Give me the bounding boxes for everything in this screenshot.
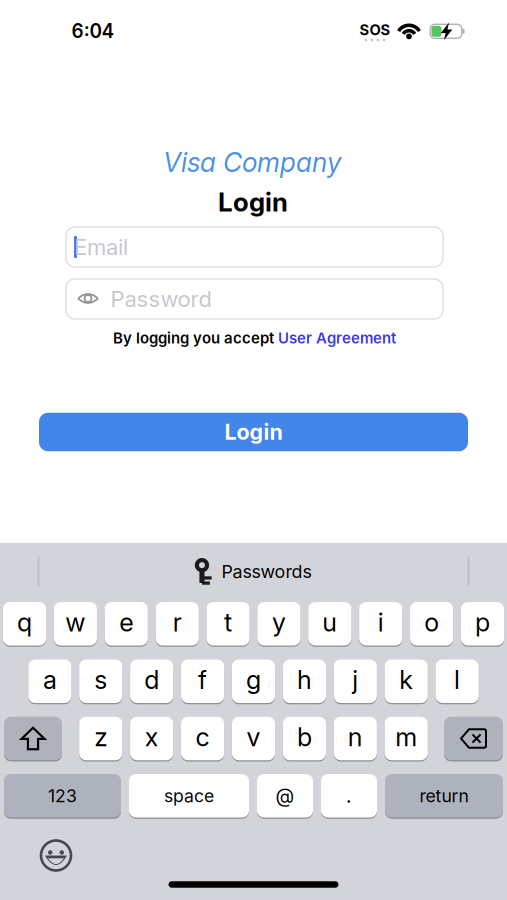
- button[interactable]: 123: [4, 773, 121, 818]
- button[interactable]: y: [257, 601, 301, 646]
- staticText: i: [378, 607, 384, 638]
- button[interactable]: Password: [66, 279, 443, 319]
- staticText: Password: [110, 286, 211, 312]
- staticText: Visa Company: [163, 146, 341, 178]
- staticText: f: [198, 664, 207, 695]
- staticText: Email: [74, 234, 128, 260]
- button[interactable]: a: [28, 658, 71, 704]
- staticText: @: [275, 784, 294, 807]
- staticText: k: [399, 664, 413, 695]
- staticText: x: [145, 722, 159, 752]
- staticText: 123: [48, 785, 77, 806]
- button[interactable]: x: [130, 716, 173, 761]
- staticText: r: [173, 607, 182, 638]
- staticText: .: [346, 784, 352, 807]
- staticText: e: [119, 607, 133, 638]
- button[interactable]: e: [105, 601, 148, 646]
- button[interactable]: Emoji: [39, 838, 73, 872]
- staticText: u: [322, 607, 337, 638]
- staticText: w: [65, 607, 85, 638]
- button[interactable]: k: [385, 658, 428, 704]
- staticText: 6:04: [71, 19, 114, 42]
- button[interactable]: v: [232, 716, 275, 761]
- button[interactable]: t: [206, 601, 250, 646]
- staticText: z: [94, 722, 107, 752]
- button[interactable]: q: [3, 601, 46, 646]
- button[interactable]: b: [283, 716, 326, 761]
- staticText: t: [224, 607, 232, 638]
- button[interactable]: .: [321, 773, 377, 818]
- staticText: q: [17, 607, 32, 638]
- button[interactable]: Login: [39, 413, 468, 451]
- staticText: d: [144, 664, 159, 695]
- button[interactable]: f: [181, 658, 224, 704]
- button[interactable]: m: [385, 716, 428, 761]
- button[interactable]: User Agreement: [278, 329, 396, 347]
- staticText: j: [352, 664, 358, 695]
- staticText: c: [196, 722, 210, 752]
- button[interactable]: o: [410, 601, 453, 646]
- button[interactable]: w: [54, 601, 97, 646]
- button[interactable]: @: [257, 773, 313, 818]
- button[interactable]: Delete: [444, 716, 503, 761]
- staticText: Passwords: [221, 561, 311, 582]
- staticText: a: [43, 664, 57, 695]
- staticText: o: [424, 607, 439, 638]
- staticText: SOS: [359, 21, 390, 39]
- staticText: b: [297, 722, 312, 752]
- button[interactable]: n: [334, 716, 377, 761]
- button[interactable]: l: [435, 658, 479, 704]
- button[interactable]: p: [461, 601, 504, 646]
- button[interactable]: s: [79, 658, 122, 704]
- button[interactable]: h: [283, 658, 326, 704]
- button[interactable]: Email: [66, 227, 443, 267]
- staticText: p: [475, 607, 490, 638]
- staticText: Login: [218, 186, 288, 218]
- button[interactable]: Passwords: [195, 558, 311, 585]
- staticText: v: [246, 722, 260, 752]
- staticText: s: [94, 664, 107, 695]
- button[interactable]: u: [308, 601, 351, 646]
- button[interactable]: r: [156, 601, 199, 646]
- staticText: By logging you accept: [113, 329, 274, 347]
- button[interactable]: return: [385, 773, 503, 818]
- staticText: g: [246, 664, 261, 695]
- staticText: y: [272, 607, 286, 638]
- button[interactable]: g: [232, 658, 275, 704]
- staticText: n: [348, 722, 363, 752]
- button[interactable]: i: [359, 601, 402, 646]
- staticText: l: [454, 664, 460, 695]
- button[interactable]: c: [181, 716, 224, 761]
- staticText: m: [395, 722, 417, 752]
- staticText: return: [419, 785, 468, 806]
- staticText: User Agreement: [278, 329, 396, 347]
- staticText: Login: [224, 419, 282, 445]
- button[interactable]: z: [79, 716, 122, 761]
- button[interactable]: space: [129, 773, 249, 818]
- button[interactable]: d: [130, 658, 173, 704]
- button[interactable]: j: [334, 658, 377, 704]
- button[interactable]: Shift: [4, 716, 62, 761]
- staticText: h: [297, 664, 312, 695]
- staticText: space: [164, 785, 214, 806]
